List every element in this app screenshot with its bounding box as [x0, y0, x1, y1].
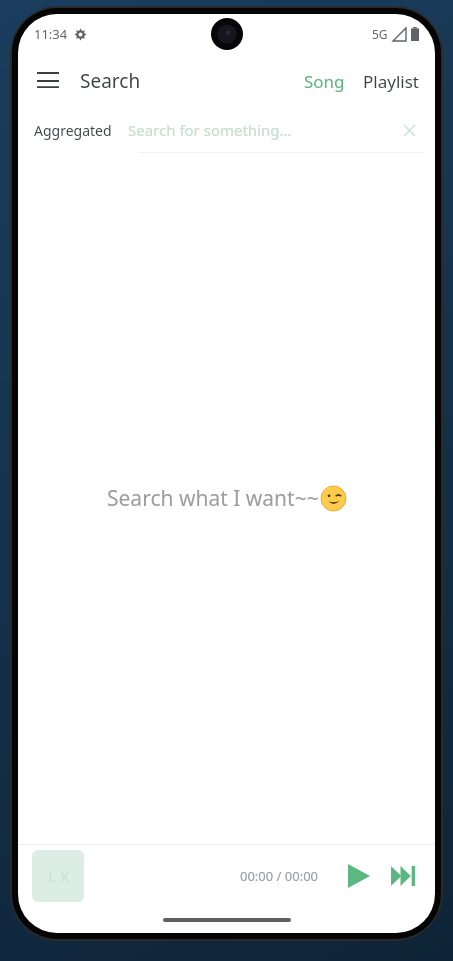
button[interactable]: Aggregated	[18, 115, 120, 146]
button[interactable]: L X	[32, 850, 84, 902]
staticText: L X	[48, 866, 69, 886]
button[interactable]: Play	[337, 854, 381, 898]
staticText: 5G	[372, 26, 388, 42]
staticText: Search what I want~~	[107, 484, 319, 513]
staticText: Song	[304, 70, 345, 93]
staticText: 11:34	[34, 25, 68, 43]
button[interactable]: Clear search	[389, 110, 429, 150]
button[interactable]: Search for something...	[120, 120, 389, 140]
staticText: Aggregated	[34, 121, 112, 140]
button[interactable]: Song	[294, 62, 355, 101]
staticText: 00:00 / 00:00	[240, 867, 319, 885]
button[interactable]: Next track	[381, 854, 425, 898]
staticText: Playlist	[363, 70, 419, 93]
button[interactable]: Playlist	[355, 62, 435, 101]
button[interactable]: Menu	[24, 57, 72, 105]
staticText: Search for something...	[128, 120, 292, 140]
staticText: Search	[80, 68, 141, 94]
